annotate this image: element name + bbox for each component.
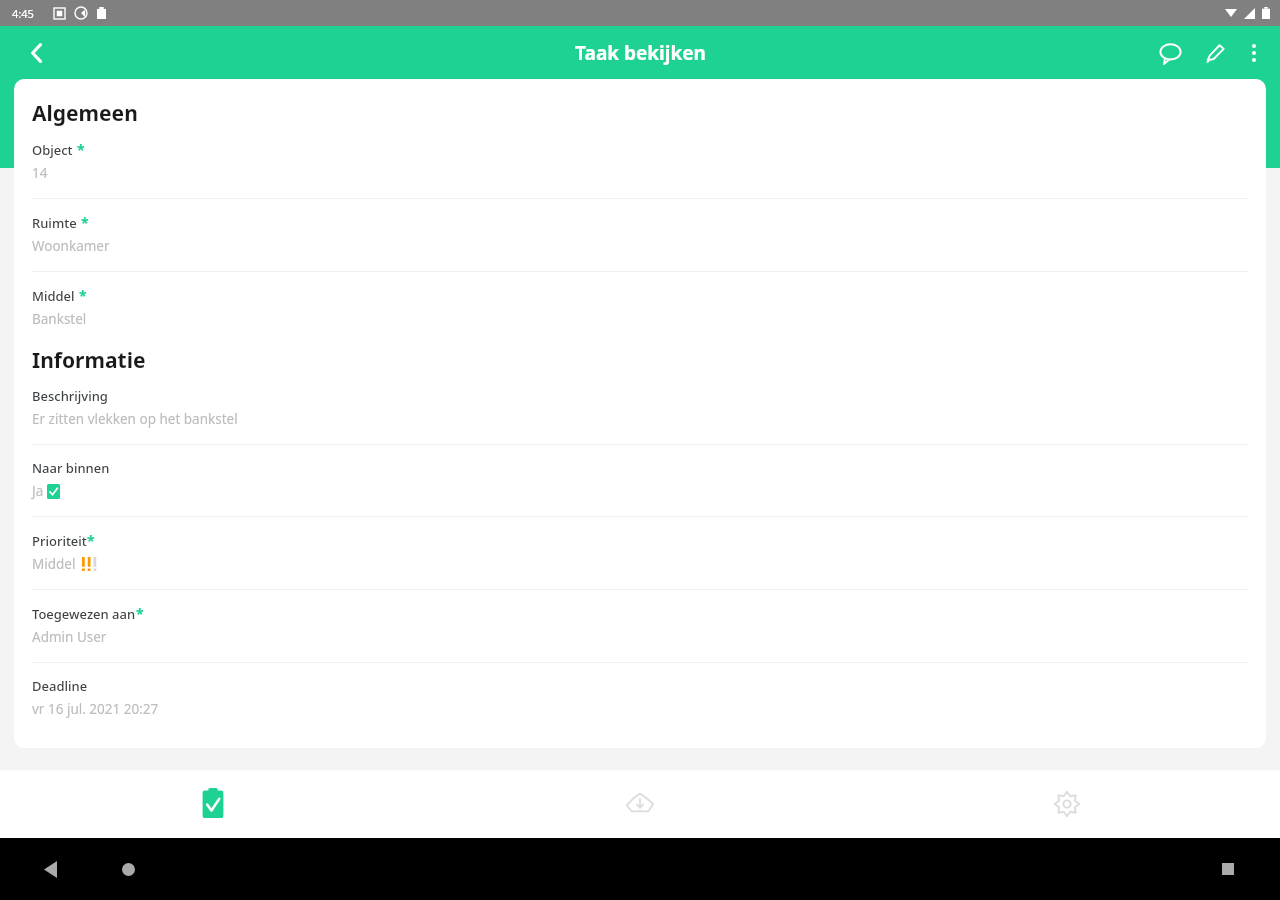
staticText: Beschrijving [32, 387, 108, 405]
button[interactable]: Home [112, 853, 144, 885]
button[interactable]: Edit [1192, 31, 1236, 75]
staticText: Ruimte [32, 214, 77, 232]
button[interactable]: Toegewezen aan [14, 604, 1266, 652]
button[interactable]: Object [14, 140, 1266, 188]
button[interactable]: Comments [1148, 31, 1192, 75]
staticText: Object [32, 141, 73, 159]
button[interactable]: Deadline [14, 677, 1266, 724]
staticText: 14 [32, 164, 48, 182]
button[interactable]: Ruimte [14, 213, 1266, 261]
staticText: * [136, 604, 144, 623]
button[interactable]: Naar binnen [14, 459, 1266, 506]
staticText: Informatie [32, 346, 146, 375]
staticText: * [79, 286, 87, 305]
staticText: Er zitten vlekken op het bankstel [32, 410, 238, 428]
staticText: * [87, 531, 95, 550]
staticText: * [77, 140, 85, 159]
button[interactable]: Back [34, 853, 66, 885]
staticText: vr 16 jul. 2021 20:27 [32, 700, 159, 718]
staticText: Toegewezen aan [32, 605, 136, 623]
button[interactable]: Back [14, 30, 60, 76]
staticText: Ja [32, 482, 44, 500]
button[interactable]: Beschrijving [14, 387, 1266, 434]
staticText: Algemeen [32, 99, 138, 128]
button[interactable]: Tasks [0, 770, 426, 838]
staticText: Bankstel [32, 310, 87, 328]
button[interactable]: Recents [1212, 853, 1244, 885]
button[interactable]: Prioriteit [14, 531, 1266, 579]
staticText: Prioriteit [32, 532, 87, 550]
staticText: 4:45 [12, 6, 34, 21]
staticText: * [81, 213, 89, 232]
button[interactable]: More options [1236, 35, 1272, 71]
staticText: Taak bekijken [575, 40, 706, 66]
staticText: Deadline [32, 677, 88, 695]
staticText: Woonkamer [32, 237, 110, 255]
staticText: Admin User [32, 628, 107, 646]
staticText: Middel [32, 287, 75, 305]
staticText: Naar binnen [32, 459, 110, 477]
staticText: Middel [32, 555, 76, 573]
button[interactable]: Middel [14, 286, 1266, 334]
